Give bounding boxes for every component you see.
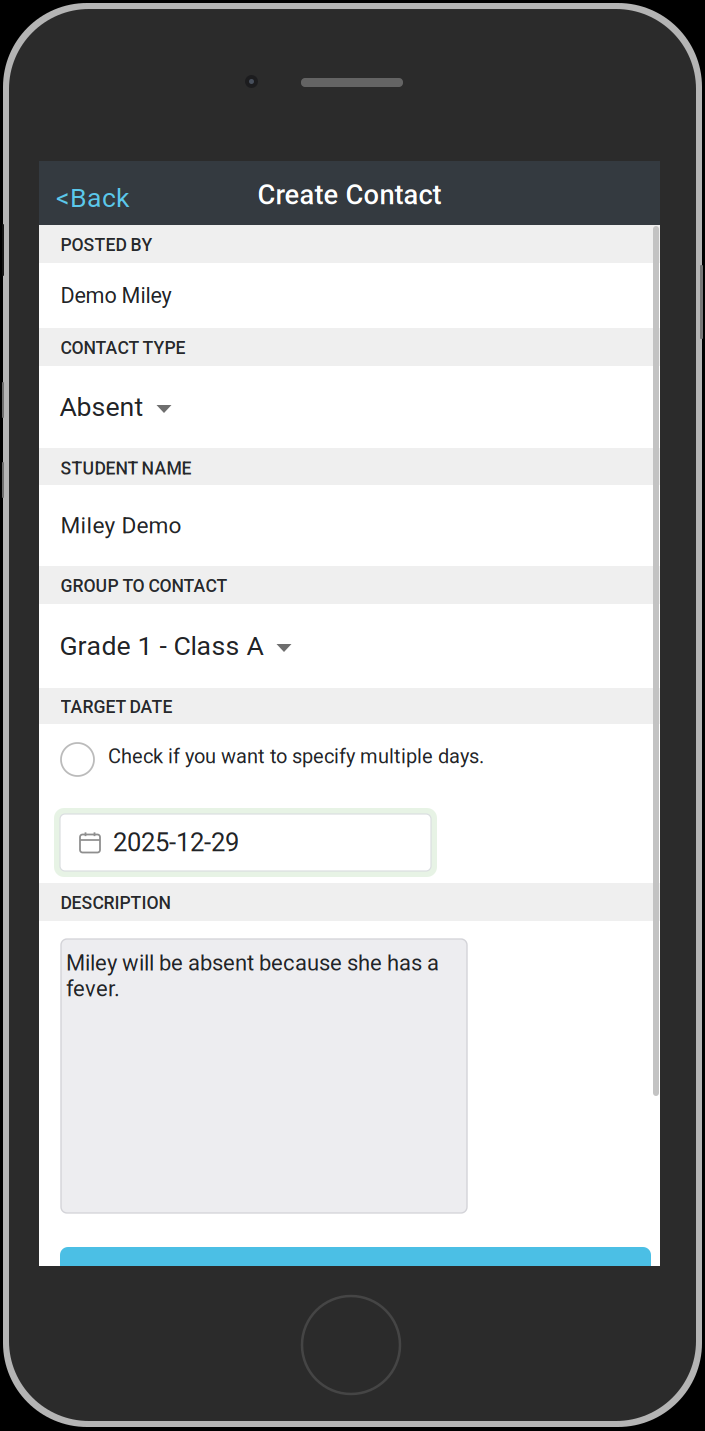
staticText: Grade 1 - Class A: [59, 630, 263, 662]
button[interactable]: <Back: [39, 165, 146, 221]
staticText: 2025-12-29: [113, 827, 239, 857]
staticText: <Back: [56, 182, 130, 214]
staticText: Demo Miley: [60, 283, 171, 308]
staticText: STUDENT NAME: [60, 458, 191, 479]
staticText: TARGET DATE: [60, 697, 172, 717]
staticText: Check if you want to specify multiple da…: [108, 745, 484, 768]
staticText: CONTACT TYPE: [60, 338, 185, 358]
button[interactable]: Absent: [39, 366, 660, 448]
button[interactable]: Submit: [60, 1247, 651, 1305]
staticText: Create Contact: [257, 179, 441, 211]
button[interactable]: Description: [61, 939, 467, 1213]
button[interactable]: Check if you want to specify multiple da…: [39, 737, 660, 782]
button[interactable]: Target date 2025-12-29: [54, 808, 437, 877]
staticText: Absent: [59, 391, 143, 423]
button[interactable]: Grade 1 - Class A: [39, 604, 660, 688]
staticText: Miley will be absent because she has a f…: [66, 950, 439, 1002]
staticText: POSTED BY: [60, 235, 152, 255]
staticText: DESCRIPTION: [60, 893, 170, 913]
staticText: Miley Demo: [60, 512, 181, 539]
staticText: GROUP TO CONTACT: [60, 576, 227, 596]
